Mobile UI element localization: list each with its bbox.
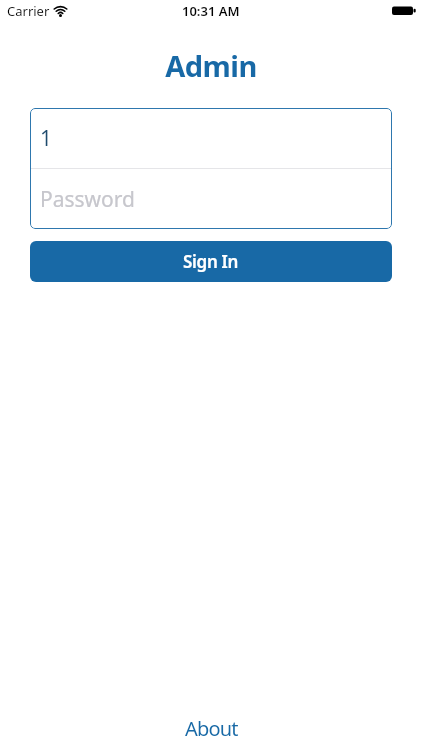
staticText: Password <box>40 185 135 214</box>
staticText: Admin <box>0 46 422 85</box>
staticText: Sign In <box>183 250 239 273</box>
staticText: Carrier <box>7 2 50 20</box>
button[interactable]: About <box>185 715 238 742</box>
button[interactable]: Sign In <box>30 241 392 282</box>
staticText: 1 <box>40 124 53 153</box>
staticText: 10:31 AM <box>182 2 240 20</box>
button[interactable]: Password <box>30 169 392 229</box>
staticText: About <box>185 715 238 742</box>
button[interactable]: 1 <box>30 108 392 168</box>
